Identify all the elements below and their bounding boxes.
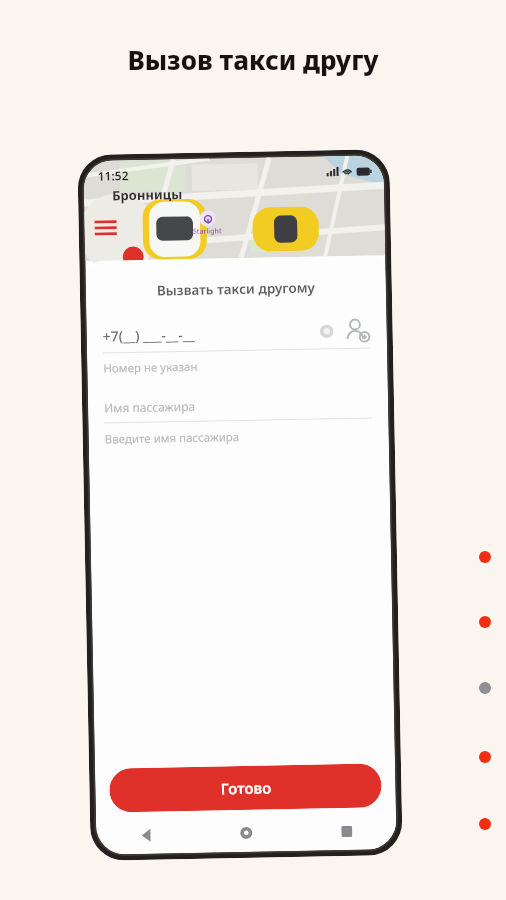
button[interactable]: Clear xyxy=(318,323,335,339)
staticText: Вызвать такси другому xyxy=(86,277,386,301)
button[interactable]: Add contact xyxy=(344,317,371,344)
staticText: Starlight xyxy=(193,226,222,237)
staticText: 11:52 xyxy=(97,167,129,184)
staticText: Введите имя пассажира xyxy=(105,426,373,447)
button[interactable]: Home xyxy=(196,819,297,847)
button[interactable]: Back xyxy=(96,821,197,849)
button[interactable]: Готово xyxy=(109,763,382,812)
staticText: Бронницы xyxy=(112,185,183,204)
staticText: Номер не указан xyxy=(103,355,371,377)
button[interactable]: Recents xyxy=(296,817,396,845)
staticText: +7(__) ___-__-__ xyxy=(102,322,319,346)
button[interactable]: Menu xyxy=(94,218,117,237)
staticText: Имя пассажира xyxy=(104,394,372,415)
staticText: Вызов такси другу xyxy=(0,42,506,77)
staticText: Готово xyxy=(220,777,272,798)
